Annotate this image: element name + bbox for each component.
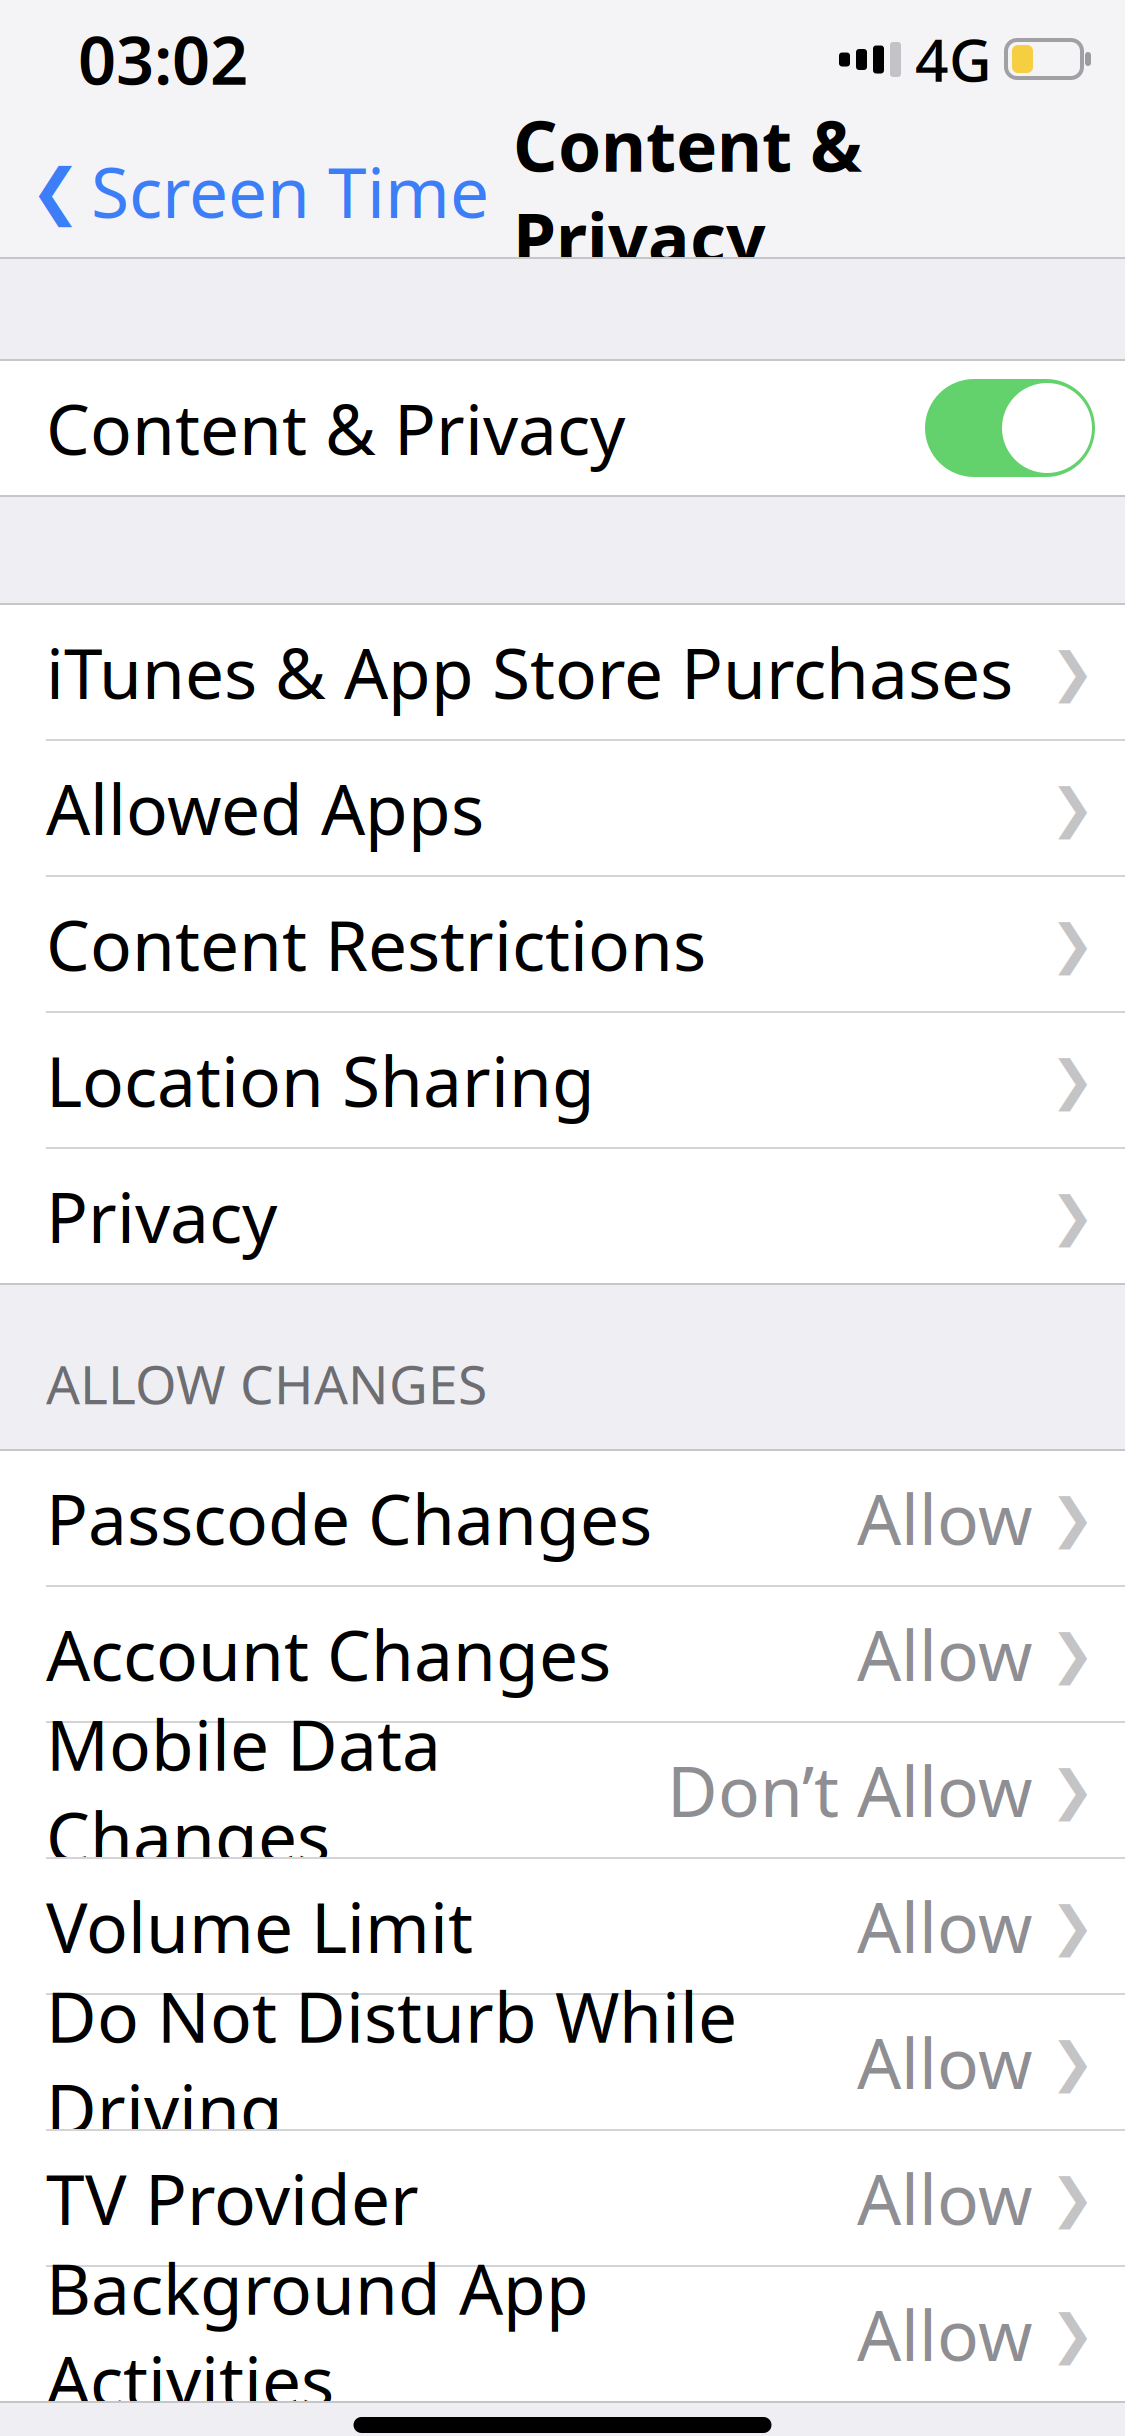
staticText: Volume Limit xyxy=(46,1880,473,1972)
staticText: Content & Privacy xyxy=(46,382,625,474)
button[interactable]: Content & Privacy toggle xyxy=(925,379,1095,477)
staticText: ❯ xyxy=(1050,778,1095,838)
staticText: 4G xyxy=(915,20,992,98)
button[interactable]: Background App Activities xyxy=(0,2267,1125,2401)
staticText: Allow xyxy=(857,1880,1032,1972)
staticText: ❯ xyxy=(1050,914,1095,974)
staticText: ❯ xyxy=(1050,1186,1095,1246)
staticText: 03:02 xyxy=(78,15,248,103)
staticText: ❯ xyxy=(1050,1896,1095,1956)
button[interactable]: Passcode Changes xyxy=(0,1451,1125,1585)
staticText: ❮ xyxy=(30,156,81,226)
staticText: Allow xyxy=(857,2288,1032,2380)
staticText: Content Restrictions xyxy=(46,898,706,990)
staticText: Screen Time xyxy=(91,145,489,237)
staticText: Content & Privacy xyxy=(513,99,862,283)
staticText: iTunes & App Store Purchases xyxy=(46,626,1013,718)
button[interactable]: Location Sharing xyxy=(0,1013,1125,1147)
staticText: ALLOW CHANGES xyxy=(46,1348,487,1419)
staticText: ❯ xyxy=(1050,2168,1095,2228)
button[interactable]: Volume Limit xyxy=(0,1859,1125,1993)
button[interactable]: ❮ xyxy=(0,125,489,257)
staticText: TV Provider xyxy=(46,2152,419,2244)
staticText: Allowed Apps xyxy=(46,762,484,854)
staticText: Don’t Allow xyxy=(667,1744,1032,1836)
button[interactable]: Do Not Disturb While Driving xyxy=(0,1995,1125,2129)
staticText: Privacy xyxy=(46,1170,277,1262)
staticText: Passcode Changes xyxy=(46,1472,652,1564)
button[interactable]: Privacy xyxy=(0,1149,1125,1283)
button[interactable]: Allowed Apps xyxy=(0,741,1125,875)
button[interactable]: Mobile Data Changes xyxy=(0,1723,1125,1857)
staticText: ❯ xyxy=(1050,1050,1095,1110)
staticText: ❯ xyxy=(1050,1488,1095,1548)
button[interactable]: Account Changes xyxy=(0,1587,1125,1721)
staticText: Background App Activities xyxy=(46,2242,589,2426)
staticText: ❯ xyxy=(1050,642,1095,702)
staticText: Location Sharing xyxy=(46,1034,595,1126)
staticText: Mobile Data Changes xyxy=(46,1698,441,1882)
staticText: ❯ xyxy=(1050,1624,1095,1684)
staticText: ❯ xyxy=(1050,1760,1095,1820)
button[interactable]: Content Restrictions xyxy=(0,877,1125,1011)
staticText: ❯ xyxy=(1050,2032,1095,2092)
staticText: Allow xyxy=(857,1608,1032,1700)
staticText: ❯ xyxy=(1050,2304,1095,2364)
staticText: Allow xyxy=(857,1472,1032,1564)
button[interactable]: iTunes & App Store Purchases xyxy=(0,605,1125,739)
staticText: Account Changes xyxy=(46,1608,611,1700)
button[interactable]: TV Provider xyxy=(0,2131,1125,2265)
staticText: Do Not Disturb While Driving xyxy=(46,1970,737,2154)
staticText: Allow xyxy=(857,2152,1032,2244)
staticText: Allow xyxy=(857,2016,1032,2108)
